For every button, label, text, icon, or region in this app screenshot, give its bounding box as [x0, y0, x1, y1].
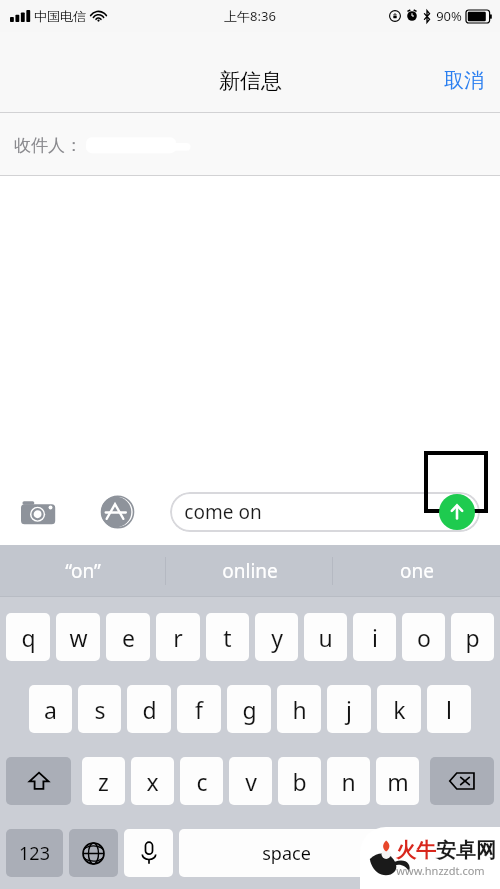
- button[interactable]: Send: [439, 494, 475, 530]
- staticText: h: [292, 694, 307, 725]
- button[interactable]: w: [56, 613, 100, 661]
- button[interactable]: 123: [6, 829, 63, 877]
- staticText: a: [44, 694, 57, 725]
- button[interactable]: 取消: [428, 60, 500, 101]
- staticText: t: [223, 622, 232, 653]
- button[interactable]: v: [229, 757, 272, 805]
- button[interactable]: x: [131, 757, 174, 805]
- button[interactable]: “on”: [0, 545, 166, 597]
- staticText: o: [417, 622, 431, 653]
- button[interactable]: Change keyboard: [69, 829, 118, 877]
- staticText: 123: [19, 841, 50, 866]
- button[interactable]: k: [377, 685, 421, 733]
- staticText: v: [245, 766, 257, 797]
- staticText: k: [393, 694, 406, 725]
- staticText: 取消: [444, 68, 484, 93]
- staticText: 收件人：: [14, 135, 82, 156]
- staticText: 火牛: [396, 838, 436, 863]
- staticText: z: [98, 766, 109, 797]
- button[interactable]: App Store: [95, 491, 137, 533]
- button[interactable]: s: [78, 685, 121, 733]
- button[interactable]: m: [376, 757, 419, 805]
- button[interactable]: online: [166, 545, 333, 597]
- button[interactable]: i: [353, 613, 396, 661]
- button[interactable]: n: [327, 757, 370, 805]
- button[interactable]: c: [180, 757, 223, 805]
- staticText: d: [142, 694, 157, 725]
- staticText: 新信息: [219, 68, 282, 94]
- button[interactable]: d: [127, 685, 171, 733]
- staticText: f: [195, 694, 203, 725]
- button[interactable]: u: [304, 613, 347, 661]
- button[interactable]: p: [451, 613, 494, 661]
- button[interactable]: a: [29, 685, 72, 733]
- button[interactable]: y: [255, 613, 298, 661]
- button[interactable]: Camera: [18, 491, 60, 533]
- button[interactable]: t: [206, 613, 249, 661]
- button[interactable]: space: [179, 829, 393, 877]
- staticText: one: [400, 558, 434, 584]
- staticText: c: [196, 766, 208, 797]
- staticText: e: [122, 622, 135, 653]
- staticText: 中国电信: [34, 8, 86, 24]
- staticText: b: [292, 766, 307, 797]
- button[interactable]: z: [82, 757, 125, 805]
- staticText: i: [372, 622, 378, 653]
- button[interactable]: b: [278, 757, 321, 805]
- staticText: n: [341, 766, 356, 797]
- staticText: 90%: [436, 7, 462, 25]
- staticText: g: [242, 694, 257, 725]
- staticText: w: [69, 622, 88, 653]
- button[interactable]: h: [277, 685, 321, 733]
- button[interactable]: f: [177, 685, 221, 733]
- staticText: r: [173, 622, 183, 653]
- button[interactable]: r: [156, 613, 200, 661]
- button[interactable]: o: [402, 613, 445, 661]
- button[interactable]: [399, 829, 494, 877]
- button[interactable]: one: [333, 545, 500, 597]
- staticText: 安卓网: [436, 838, 496, 863]
- staticText: “on”: [65, 558, 101, 584]
- button[interactable]: j: [327, 685, 371, 733]
- button[interactable]: l: [427, 685, 471, 733]
- staticText: come on: [184, 499, 262, 525]
- staticText: x: [146, 766, 159, 797]
- button[interactable]: Backspace: [430, 757, 494, 805]
- staticText: p: [465, 622, 480, 653]
- staticText: space: [262, 841, 311, 866]
- staticText: m: [387, 766, 409, 797]
- staticText: s: [94, 694, 106, 725]
- staticText: j: [346, 694, 352, 725]
- staticText: www.hnzzdt.com: [396, 863, 485, 878]
- staticText: q: [21, 622, 36, 653]
- staticText: l: [446, 694, 452, 725]
- button[interactable]: q: [6, 613, 50, 661]
- staticText: online: [222, 558, 278, 584]
- staticText: 上午8:36: [224, 7, 276, 25]
- staticText: u: [318, 622, 333, 653]
- button[interactable]: g: [227, 685, 271, 733]
- button[interactable]: Shift: [6, 757, 71, 805]
- button[interactable]: come on: [170, 492, 480, 532]
- staticText: y: [271, 622, 283, 653]
- button[interactable]: e: [106, 613, 150, 661]
- button[interactable]: Dictation: [124, 829, 173, 877]
